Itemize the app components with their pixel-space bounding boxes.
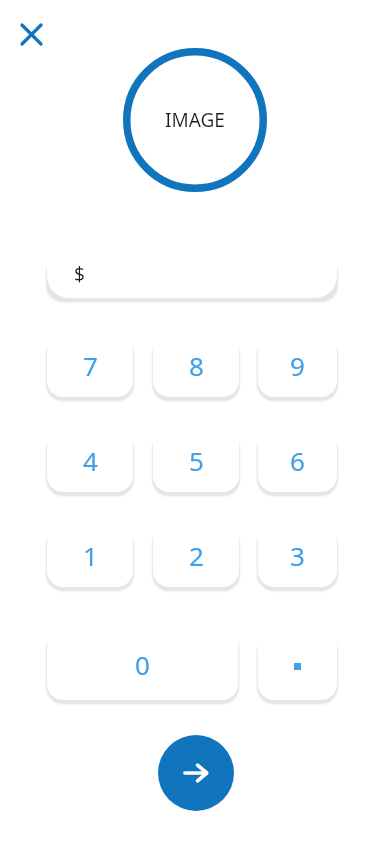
button[interactable]: 6 [258,429,337,492]
button[interactable]: 5 [153,429,239,492]
button[interactable]: 3 [258,524,337,587]
button[interactable]: 4 [47,429,133,492]
staticText: 0 [135,647,150,682]
staticText: 1 [83,538,98,573]
button[interactable]: Close [12,15,50,53]
button[interactable]: 0 [47,628,238,700]
staticText: $ [74,261,85,287]
staticText: 9 [290,348,305,383]
staticText: 2 [189,538,204,573]
staticText: 8 [189,348,204,383]
button[interactable]: 9 [258,334,337,397]
button[interactable]: 1 [47,524,133,587]
staticText: 3 [290,538,305,573]
button[interactable]: 8 [153,334,239,397]
staticText: 6 [290,443,305,478]
button[interactable]: Decimal point [258,632,337,700]
staticText: 7 [83,348,98,383]
staticText: 4 [83,443,98,478]
button[interactable]: 2 [153,524,239,587]
staticText: IMAGE [165,107,225,133]
staticText: 5 [189,443,204,478]
button[interactable]: $ [47,252,337,298]
button[interactable]: Continue [158,735,234,811]
button[interactable]: 7 [47,334,133,397]
